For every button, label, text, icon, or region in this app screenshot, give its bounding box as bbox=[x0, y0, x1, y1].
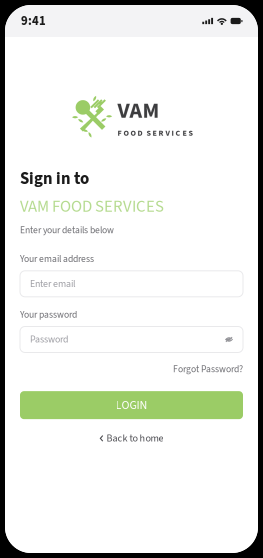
staticText: VAM bbox=[117, 95, 159, 126]
staticText: Enter email bbox=[30, 277, 76, 291]
staticText: Enter your details below bbox=[20, 223, 114, 237]
staticText: Back to home bbox=[106, 431, 163, 446]
staticText: Sign in to bbox=[20, 167, 89, 191]
staticText: Your password bbox=[20, 308, 77, 321]
staticText: F O O D S E R V I C E S bbox=[117, 127, 192, 139]
button[interactable]: Back to home bbox=[20, 431, 243, 446]
staticText: Your email address bbox=[20, 252, 94, 266]
button[interactable]: LOGIN bbox=[20, 391, 243, 419]
staticText: Password bbox=[30, 332, 68, 347]
staticText: LOGIN bbox=[115, 397, 147, 414]
staticText: Forgot Password? bbox=[173, 362, 243, 376]
staticText: VAM FOOD SERVICES bbox=[20, 195, 164, 218]
button[interactable]: Forgot Password? bbox=[173, 362, 243, 376]
staticText: 9:41 bbox=[21, 12, 46, 30]
